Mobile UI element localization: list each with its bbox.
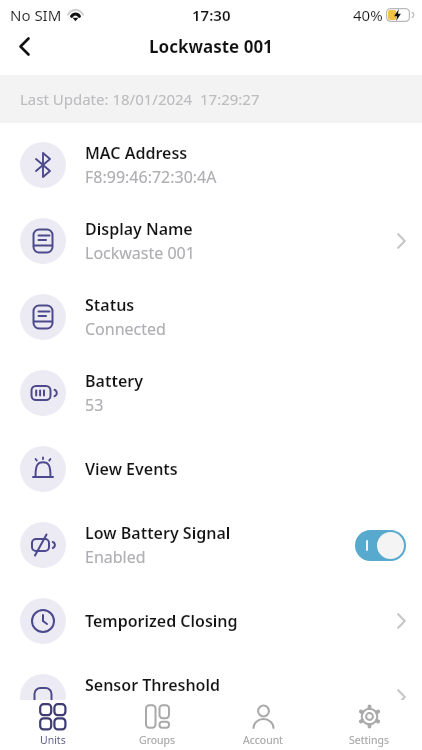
button[interactable]: MAC Address: [20, 127, 406, 203]
staticText: Last Update: 18/01/2024 17:29:27: [20, 89, 260, 109]
button[interactable]: Sensor Threshold: [20, 659, 406, 735]
button[interactable]: View Events: [20, 431, 406, 507]
staticText: Battery: [85, 370, 143, 392]
button[interactable]: Display Name: [20, 203, 406, 279]
button[interactable]: Battery: [20, 355, 406, 431]
staticText: Display Name: [85, 218, 193, 240]
staticText: 53: [85, 394, 104, 416]
button[interactable]: Units: [0, 703, 105, 747]
button[interactable]: Groups: [105, 703, 210, 747]
staticText: F8:99:46:72:30:4A: [85, 166, 217, 188]
button[interactable]: Status: [20, 279, 406, 355]
button[interactable]: [355, 530, 406, 561]
staticText: No SIM: [10, 5, 62, 25]
staticText: Account: [243, 733, 283, 747]
button[interactable]: Temporized Closing: [20, 583, 406, 659]
staticText: Status: [85, 294, 135, 316]
staticText: Sensor Threshold: [85, 674, 221, 696]
button[interactable]: [10, 32, 38, 60]
button[interactable]: Low Battery Signal: [20, 507, 406, 583]
button[interactable]: Account: [210, 703, 316, 747]
staticText: MAC Address: [85, 142, 188, 164]
staticText: View Events: [85, 458, 178, 480]
staticText: 17:30: [192, 5, 231, 25]
staticText: 40%: [353, 5, 383, 25]
button[interactable]: Settings: [316, 703, 422, 747]
staticText: Connected: [85, 318, 166, 340]
staticText: Enabled: [85, 546, 146, 568]
staticText: Low Battery Signal: [85, 522, 231, 544]
staticText: Lockwaste 001: [85, 242, 195, 264]
staticText: Settings: [349, 733, 389, 747]
staticText: Groups: [139, 733, 176, 747]
staticText: Units: [40, 733, 66, 747]
staticText: Lockwaste 001: [149, 35, 273, 58]
staticText: Temporized Closing: [85, 610, 238, 632]
